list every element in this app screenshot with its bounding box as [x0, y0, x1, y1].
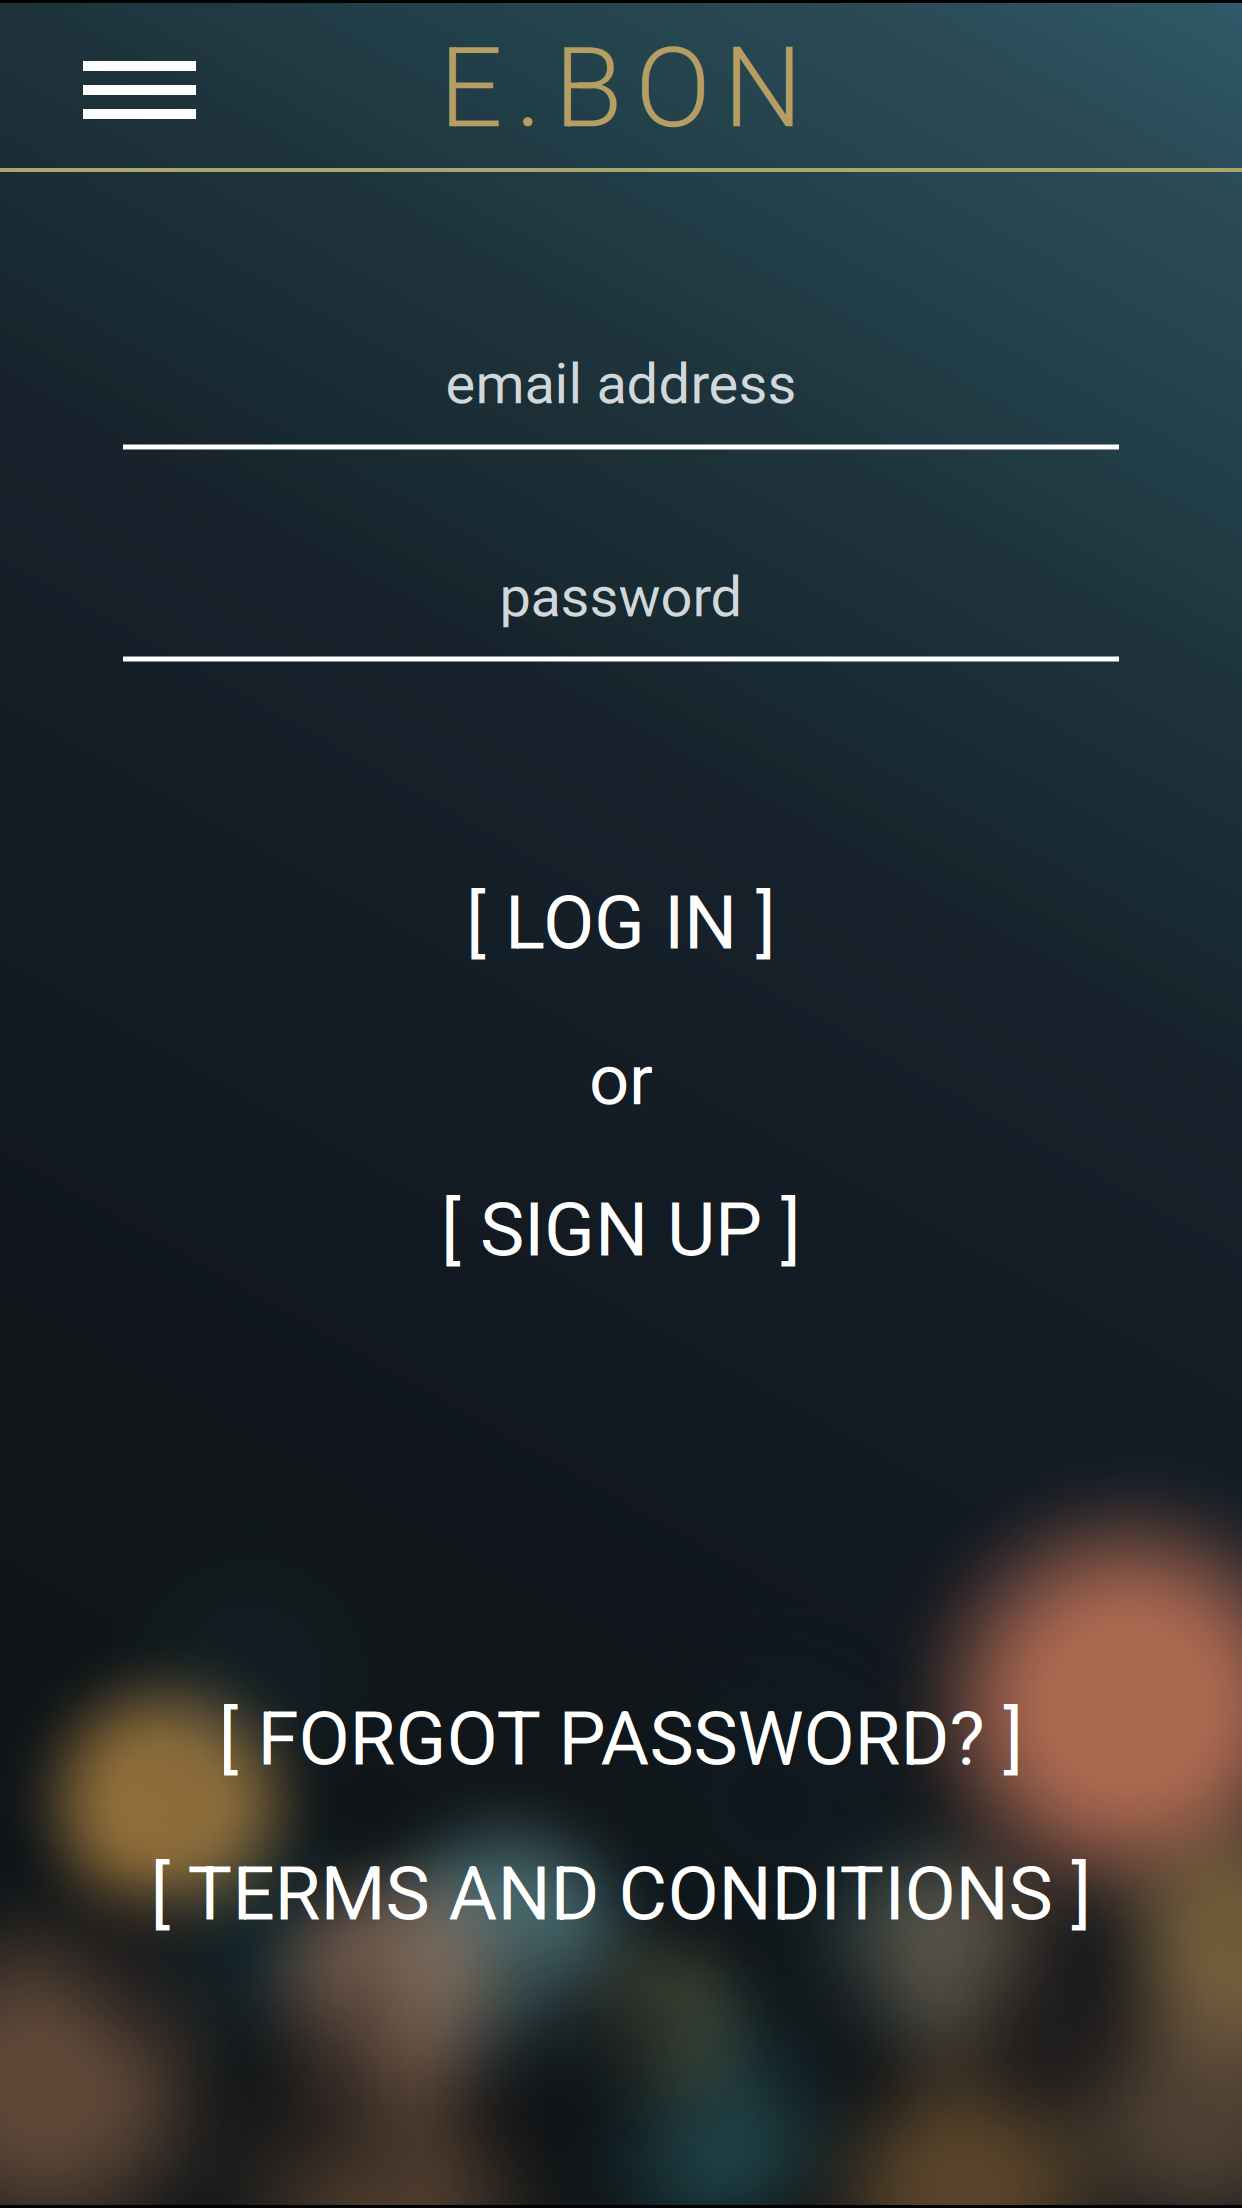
staticText: password: [499, 564, 742, 630]
staticText: email address: [445, 351, 796, 417]
staticText: or: [589, 1039, 653, 1121]
button[interactable]: Menu: [83, 61, 196, 119]
button[interactable]: [ TERMS AND CONDITIONS ]: [116, 1839, 1126, 1949]
button[interactable]: [ LOG IN ]: [411, 868, 831, 978]
staticText: [ SIGN UP ]: [441, 1186, 801, 1274]
button[interactable]: [ FORGOT PASSWORD? ]: [181, 1684, 1061, 1794]
staticText: [ LOG IN ]: [466, 879, 776, 967]
staticText: E.BON: [439, 22, 803, 154]
button[interactable]: [ SIGN UP ]: [391, 1175, 851, 1285]
staticText: [ TERMS AND CONDITIONS ]: [150, 1850, 1091, 1938]
staticText: [ FORGOT PASSWORD? ]: [218, 1695, 1023, 1783]
